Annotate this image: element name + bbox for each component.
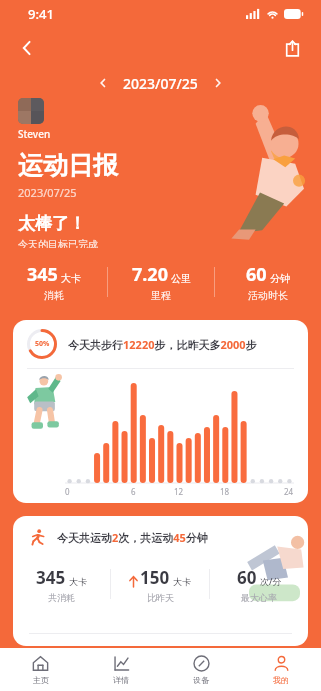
staticText: 60 <box>237 566 257 589</box>
staticText: Steven <box>18 127 51 141</box>
staticText: 12 <box>174 486 184 497</box>
staticText: 主页 <box>33 675 49 685</box>
button[interactable]: Running <box>13 516 308 646</box>
button[interactable]: Next day <box>204 69 232 97</box>
staticText: 今天共运动2次，共运动45分钟 <box>57 530 208 545</box>
staticText: 0 <box>65 486 70 497</box>
staticText: 消耗 <box>44 289 64 302</box>
button[interactable]: Share <box>273 29 311 67</box>
staticText: 24 <box>284 486 294 497</box>
staticText: 60 <box>246 262 267 287</box>
button[interactable]: Profile avatar <box>18 98 44 124</box>
staticText: 大卡 <box>173 576 191 587</box>
staticText: 我的 <box>273 675 289 685</box>
staticText: 6 <box>131 486 136 497</box>
staticText: 2023/07/25 <box>18 185 77 200</box>
staticText: 活动时长 <box>248 289 288 302</box>
staticText: 2023/07/25 <box>123 74 198 93</box>
staticText: 运动日报 <box>18 150 118 181</box>
staticText: 150 <box>140 566 170 589</box>
staticText: 大卡 <box>61 272 81 285</box>
button[interactable]: 50% <box>13 320 308 503</box>
staticText: 分钟 <box>270 272 290 285</box>
staticText: 共消耗 <box>48 592 75 603</box>
button[interactable]: 设备 <box>161 648 241 691</box>
staticText: 345 <box>27 262 58 287</box>
staticText: 今天共步行12220步，比昨天多2000步 <box>68 337 257 352</box>
button[interactable]: Back <box>8 29 46 67</box>
other: Running <box>29 529 46 546</box>
button[interactable]: 主页 <box>0 648 81 691</box>
staticText: 9:41 <box>28 5 54 23</box>
button[interactable]: Previous day <box>89 69 117 97</box>
staticText: 50% <box>35 339 50 349</box>
staticText: 最大心率 <box>241 592 277 603</box>
staticText: 今天的目标已完成 <box>18 238 98 248</box>
staticText: 太棒了！ <box>18 213 86 234</box>
staticText: 详情 <box>113 675 129 685</box>
button[interactable]: 我的 <box>241 648 321 691</box>
staticText: 公里 <box>171 272 191 285</box>
staticText: 大卡 <box>69 576 87 587</box>
staticText: 次/分 <box>260 575 282 587</box>
staticText: 设备 <box>193 675 209 685</box>
staticText: 7.20 <box>132 262 168 287</box>
staticText: 345 <box>36 566 66 589</box>
staticText: 18 <box>220 486 230 497</box>
staticText: 里程 <box>151 289 171 302</box>
button[interactable]: 详情 <box>81 648 161 691</box>
staticText: 比昨天 <box>147 592 174 603</box>
